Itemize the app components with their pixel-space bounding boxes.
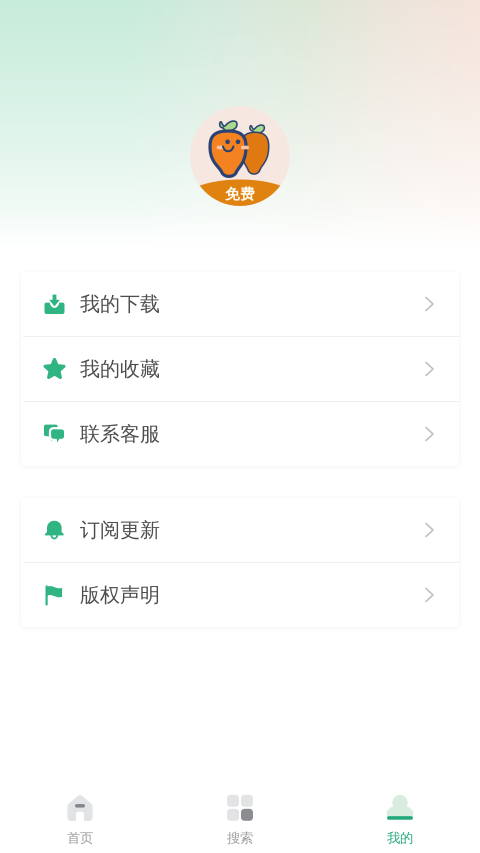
button[interactable]: 我的下载 xyxy=(21,272,459,336)
button[interactable]: 联系客服 xyxy=(21,402,459,466)
staticText: 我的收藏 xyxy=(80,357,160,381)
staticText: 订阅更新 xyxy=(80,518,160,542)
staticText: 我的 xyxy=(387,830,413,846)
button[interactable]: 版权声明 xyxy=(21,563,459,627)
button[interactable]: 我的收藏 xyxy=(21,337,459,401)
staticText: 首页 xyxy=(67,830,93,846)
staticText: 版权声明 xyxy=(80,583,160,607)
staticText: 搜索 xyxy=(227,830,253,846)
button[interactable]: 订阅更新 xyxy=(21,498,459,562)
staticText: 我的下载 xyxy=(80,292,160,316)
button[interactable]: 我的 xyxy=(320,783,480,853)
button[interactable]: 搜索 xyxy=(160,783,320,853)
staticText: 免费 xyxy=(225,185,255,203)
staticText: 联系客服 xyxy=(80,422,160,446)
button[interactable]: 首页 xyxy=(0,783,160,853)
